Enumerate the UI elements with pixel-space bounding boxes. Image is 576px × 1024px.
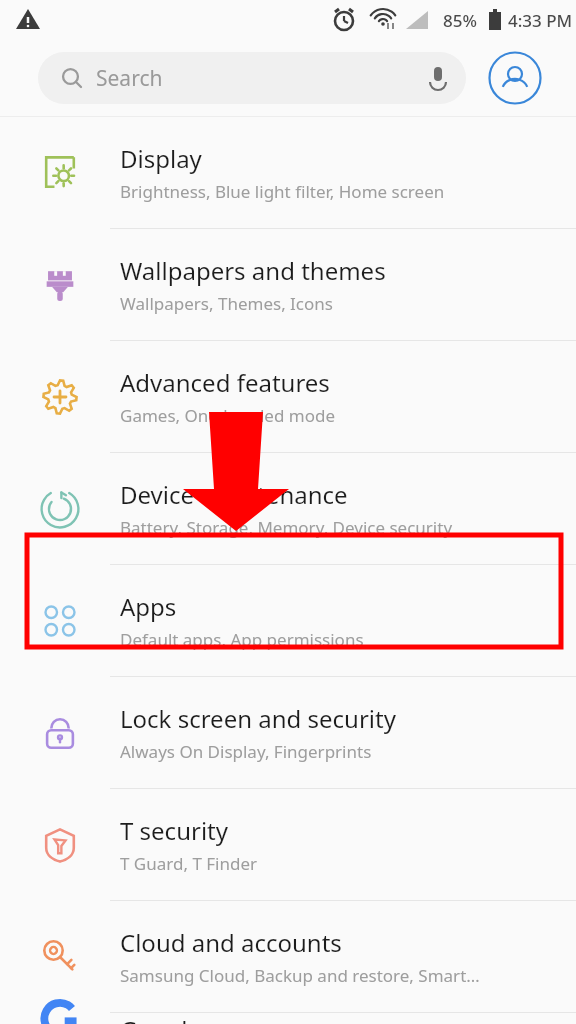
button[interactable]: Account bbox=[488, 51, 542, 105]
button[interactable]: Search bbox=[38, 52, 466, 104]
button[interactable]: Apps bbox=[0, 565, 576, 676]
button[interactable]: Wallpapers and themes bbox=[0, 229, 576, 340]
staticText: Advanced features bbox=[120, 366, 330, 399]
staticText: Wallpapers, Themes, Icons bbox=[120, 292, 333, 315]
staticText: Lock screen and security bbox=[120, 702, 396, 735]
staticText: Google bbox=[120, 1013, 201, 1024]
button[interactable]: Display bbox=[0, 117, 576, 228]
staticText: Battery, Storage, Memory, Device securit… bbox=[120, 516, 453, 539]
staticText: Brightness, Blue light filter, Home scre… bbox=[120, 180, 445, 203]
button[interactable]: Advanced features bbox=[0, 341, 576, 452]
button[interactable]: T security bbox=[0, 789, 576, 900]
staticText: 85% bbox=[443, 9, 477, 32]
staticText: Search bbox=[96, 64, 163, 93]
staticText: Always On Display, Fingerprints bbox=[120, 740, 372, 763]
staticText: Device maintenance bbox=[120, 478, 348, 511]
staticText: 4:33 PM bbox=[508, 9, 573, 32]
staticText: T Guard, T Finder bbox=[120, 852, 258, 875]
staticText: Games, One-handed mode bbox=[120, 404, 336, 427]
staticText: Apps bbox=[120, 590, 177, 623]
button[interactable]: Lock screen and security bbox=[0, 677, 576, 788]
staticText: Samsung Cloud, Backup and restore, Smart… bbox=[120, 964, 480, 987]
button[interactable]: Voice search bbox=[418, 58, 458, 98]
button[interactable]: Google bbox=[0, 1013, 576, 1024]
button[interactable]: Cloud and accounts bbox=[0, 901, 576, 1012]
staticText: T security bbox=[120, 814, 228, 847]
staticText: Cloud and accounts bbox=[120, 926, 342, 959]
staticText: Display bbox=[120, 142, 202, 175]
staticText: Wallpapers and themes bbox=[120, 254, 386, 287]
button[interactable]: Device maintenance bbox=[0, 453, 576, 564]
staticText: Default apps, App permissions bbox=[120, 628, 364, 651]
